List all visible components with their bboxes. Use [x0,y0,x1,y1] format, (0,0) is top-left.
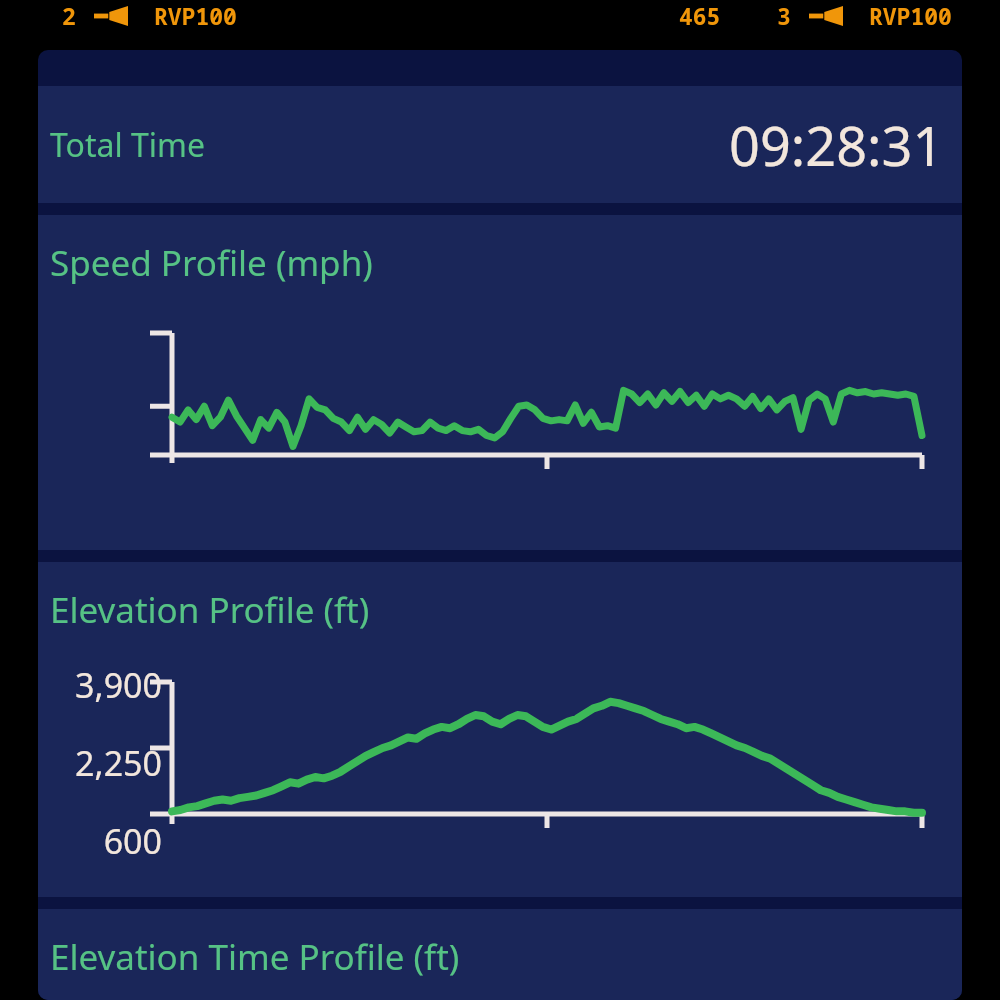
staticText: 2 [62,0,76,31]
staticText: Elevation Profile (ft) [50,586,370,634]
staticText: 600 [42,818,162,864]
button[interactable]: Elevation Time Profile (ft) [38,909,962,1000]
staticText: 09:28:31 [729,108,944,182]
staticText: 3,900 [42,662,162,708]
other: Signal [809,5,843,27]
staticText: Total Time [50,123,206,167]
staticText: RVP100 [869,0,952,31]
button[interactable]: Total Time [38,86,962,203]
staticText: Elevation Time Profile (ft) [50,933,460,981]
staticText: 465 [679,0,721,31]
staticText: RVP100 [154,0,237,31]
staticText: 3 [777,0,791,31]
staticText: 2,250 [42,740,162,786]
other: Signal [94,5,128,27]
staticText: Speed Profile (mph) [50,239,373,287]
button[interactable]: Speed Profile (mph) [38,215,962,550]
button[interactable]: Elevation Profile (ft) [38,562,962,897]
